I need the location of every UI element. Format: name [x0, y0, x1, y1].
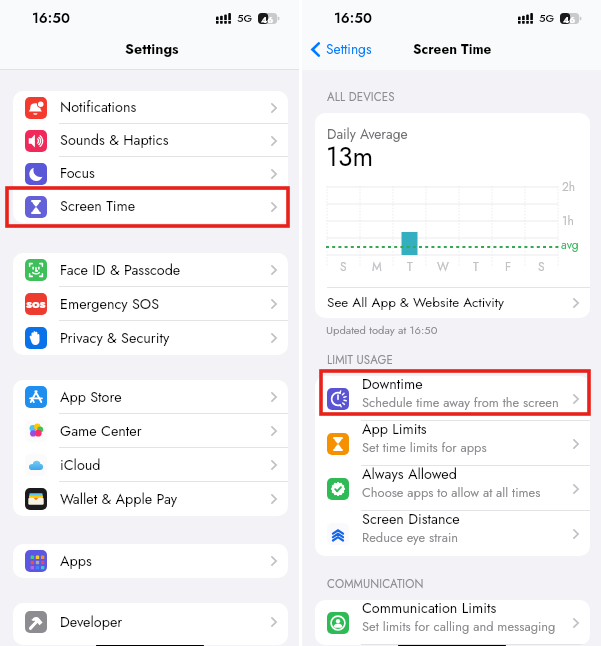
staticText: Daily Average	[327, 124, 408, 144]
button[interactable]: Screen Time	[13, 190, 288, 223]
staticText: Wallet & Apple Pay	[60, 489, 178, 510]
staticText: T	[473, 258, 479, 275]
button[interactable]: Privacy & Security	[13, 321, 288, 355]
button[interactable]: Wallet & Apple Pay	[13, 482, 288, 516]
staticText: Notifications	[60, 97, 137, 118]
staticText: Game Center	[60, 421, 142, 442]
staticText: LIMIT USAGE	[327, 352, 394, 369]
staticText: M	[372, 258, 382, 275]
staticText: S	[538, 258, 545, 275]
button[interactable]: App Store	[13, 380, 288, 414]
staticText: 16:50	[32, 8, 70, 28]
staticText: ALL DEVICES	[327, 89, 395, 106]
staticText: 16:50	[334, 8, 372, 28]
staticText: Settings	[326, 39, 372, 59]
staticText: Screen Time	[60, 196, 136, 217]
staticText: Set limits for calling and messaging	[362, 617, 556, 636]
staticText: S	[340, 258, 347, 275]
staticText: See All App & Website Activity	[327, 293, 504, 313]
staticText: App Store	[60, 387, 122, 408]
staticText: Screen Distance	[362, 509, 460, 530]
button[interactable]: App Limits	[315, 421, 590, 466]
staticText: Always Allowed	[362, 464, 457, 485]
staticText: Choose apps to allow at all times	[362, 483, 541, 502]
staticText: T	[407, 258, 413, 275]
staticText: COMMUNICATION	[327, 576, 424, 593]
button[interactable]: Sounds & Haptics	[13, 124, 288, 157]
button[interactable]: Always Allowed	[315, 466, 590, 511]
staticText: Downtime	[362, 376, 423, 395]
button[interactable]: iCloud	[13, 448, 288, 482]
staticText: Reduce eye strain	[362, 528, 459, 547]
staticText: App Limits	[362, 419, 427, 440]
button[interactable]: Communication Limits	[315, 600, 590, 645]
staticText: Screen Time	[413, 39, 492, 59]
button[interactable]: Downtime	[315, 376, 590, 421]
staticText: SOS	[26, 298, 46, 311]
staticText: 5G	[237, 10, 253, 26]
staticText: Sounds & Haptics	[60, 130, 169, 151]
button[interactable]: Game Center	[13, 414, 288, 448]
button[interactable]: See All App & Website Activity	[315, 288, 590, 318]
button[interactable]: Notifications	[13, 91, 288, 124]
staticText: 46	[563, 13, 576, 24]
staticText: 13m	[326, 138, 374, 176]
staticText: Face ID & Passcode	[60, 260, 181, 281]
staticText: iCloud	[60, 455, 101, 476]
button[interactable]: Screen Distance	[315, 511, 590, 556]
staticText: Schedule time away from the screen	[362, 393, 559, 412]
staticText: 46	[261, 13, 274, 24]
staticText: Focus	[60, 163, 95, 184]
button[interactable]: Face ID & Passcode	[13, 253, 288, 287]
staticText: avg	[561, 236, 579, 253]
staticText: Privacy & Security	[60, 328, 170, 349]
staticText: Emergency SOS	[60, 294, 160, 315]
staticText: F	[505, 258, 512, 275]
button[interactable]: SOS	[13, 287, 288, 321]
button[interactable]: Settings	[311, 39, 372, 59]
staticText: Set time limits for apps	[362, 438, 487, 457]
button[interactable]: Developer	[13, 603, 288, 641]
staticText: W	[437, 258, 449, 275]
staticText: Updated today at 16:50	[326, 322, 438, 338]
staticText: Settings	[125, 39, 179, 60]
staticText: 2h	[562, 178, 576, 195]
staticText: Communication Limits	[362, 600, 497, 619]
staticText: 1h	[562, 212, 574, 229]
button[interactable]: Focus	[13, 157, 288, 190]
staticText: Developer	[60, 612, 123, 633]
staticText: 5G	[539, 10, 555, 26]
staticText: Apps	[60, 551, 92, 572]
button[interactable]: Apps	[13, 544, 288, 578]
